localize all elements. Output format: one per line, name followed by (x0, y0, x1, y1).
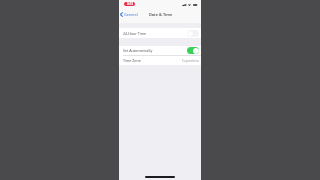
button[interactable]: Time Zone (119, 56, 201, 65)
button[interactable]: General (119, 10, 139, 19)
staticText: Cupertino (182, 58, 199, 63)
other: Battery (193, 4, 198, 6)
staticText: Time Zone (123, 58, 141, 63)
button[interactable]: Set Automatically (119, 46, 201, 55)
button[interactable]: Recording 0:13 (124, 2, 135, 6)
staticText: 24-Hour Time (123, 31, 147, 36)
button[interactable]: Toggle off (187, 30, 199, 37)
button[interactable]: Toggle on (187, 47, 199, 54)
staticText: Set Automatically (123, 48, 153, 53)
staticText: General (124, 12, 138, 17)
other: Cellular signal (182, 4, 186, 6)
button[interactable]: 24-Hour Time (119, 28, 201, 38)
staticText: 0:13 (127, 2, 133, 6)
staticText: Date & Time (149, 12, 173, 17)
other: Wi-Fi (188, 4, 191, 6)
